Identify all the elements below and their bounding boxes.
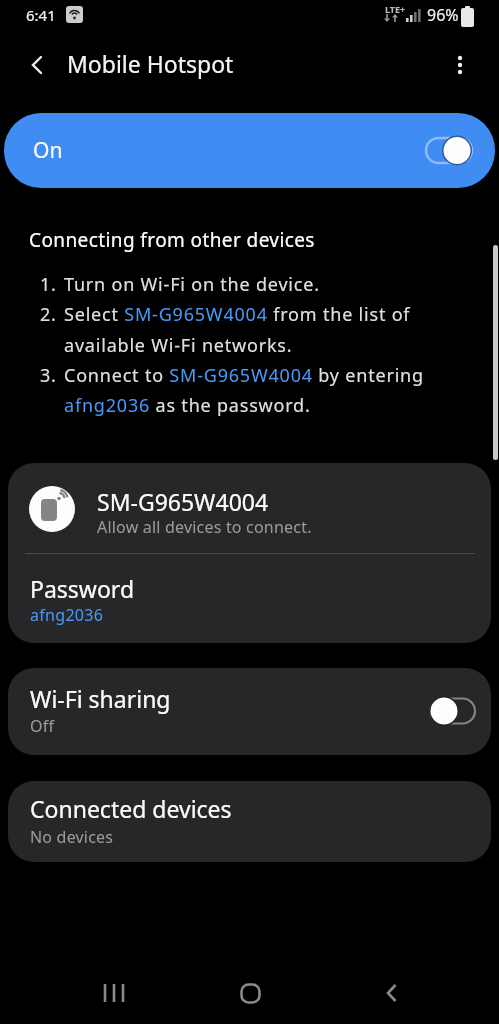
staticText: Connected devices [30,793,232,824]
staticText: afng2036 [30,604,104,626]
button[interactable] [440,45,480,85]
button[interactable]: Connected devices [8,781,491,862]
staticText: No devices [30,826,114,848]
button[interactable]: Wi-Fi sharing [8,668,491,755]
staticText: 3. [40,363,57,388]
staticText: Password [30,573,135,604]
staticText: LTE+ [385,3,406,15]
button[interactable]: Password [8,554,491,643]
staticText: Select SM-G965W4004 from the list of [64,302,411,327]
staticText: 1. [40,272,57,297]
staticText: Off [30,715,55,737]
staticText: 96% [427,4,459,26]
staticText: Wi-Fi sharing [30,683,171,714]
staticText: Mobile Hotspot [67,48,234,79]
staticText: Connecting from other devices [29,227,315,253]
staticText: Allow all devices to connect. [97,516,312,538]
staticText: available Wi-Fi networks. [64,333,293,358]
staticText: 2. [40,302,57,327]
button[interactable] [220,963,280,1023]
staticText: Turn on Wi-Fi on the device. [64,272,320,297]
button[interactable] [18,45,58,85]
staticText: Connect to SM-G965W4004 by entering [64,363,424,388]
button[interactable]: On [4,113,495,188]
staticText: afng2036 as the password. [64,393,311,418]
staticText: 6:41 [26,5,56,25]
staticText: SM-G965W4004 [97,486,269,517]
button[interactable] [84,963,144,1023]
button[interactable] [362,963,422,1023]
staticText: On [33,136,63,165]
button[interactable] [8,463,491,553]
